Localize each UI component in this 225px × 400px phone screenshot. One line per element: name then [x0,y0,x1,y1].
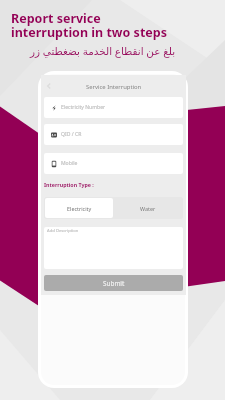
staticText: Report service interruption in two steps [11,10,167,41]
staticText: Service Interruption [86,83,142,91]
staticText: Electricity Number [61,104,106,111]
button[interactable]: QID / CR [44,124,183,145]
button[interactable]: Back [43,80,55,92]
staticText: Submit [103,279,125,288]
staticText: Electricity [67,205,92,212]
button[interactable]: Electricity [45,198,113,218]
staticText: Mobile [61,160,78,167]
staticText: بلغ عن انقطاع الخدمة بضغطتي زر [30,44,176,58]
button[interactable]: Mobile [44,153,183,174]
staticText: Interruption Type : [44,181,94,188]
button[interactable]: Electricity Number [44,97,183,118]
staticText: Water [140,205,156,212]
button[interactable]: Water [113,198,182,218]
staticText: QID / CR [61,131,82,138]
button[interactable]: Submit [44,275,183,291]
button[interactable]: Add Description [44,227,183,269]
staticText: Add Description [47,228,79,234]
